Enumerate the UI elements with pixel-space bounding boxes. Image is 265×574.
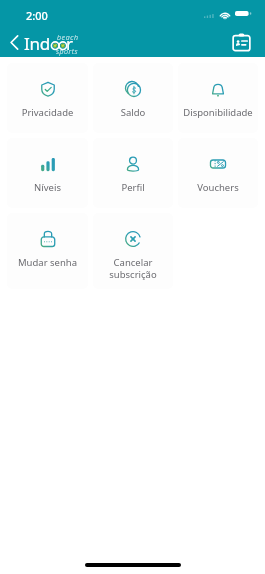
staticText: Perfil	[93, 181, 173, 194]
staticText: Ind	[24, 32, 51, 55]
button[interactable]: Disponibilidade	[178, 63, 258, 133]
button[interactable]: Vouchers	[178, 138, 258, 208]
button[interactable]: Membership card	[227, 28, 255, 56]
staticText: Disponibilidade	[178, 106, 258, 119]
staticText: Vouchers	[178, 181, 258, 194]
staticText: Níveis	[7, 181, 88, 194]
staticText: Saldo	[93, 106, 173, 119]
staticText: Cancelar subscrição	[93, 256, 173, 281]
button[interactable]: Níveis	[7, 138, 88, 208]
staticText: 2:00	[26, 8, 48, 23]
button[interactable]: Back	[0, 30, 81, 54]
staticText: Mudar senha	[7, 256, 88, 269]
staticText: beach	[57, 33, 79, 43]
button[interactable]: Mudar senha	[7, 213, 88, 289]
button[interactable]: Cancelar subscrição	[93, 213, 173, 289]
button[interactable]: Saldo	[93, 63, 173, 133]
button[interactable]: Privacidade	[7, 63, 88, 133]
button[interactable]: Perfil	[93, 138, 173, 208]
staticText: Privacidade	[7, 106, 88, 119]
staticText: r	[66, 32, 74, 55]
staticText: sports	[56, 47, 78, 57]
